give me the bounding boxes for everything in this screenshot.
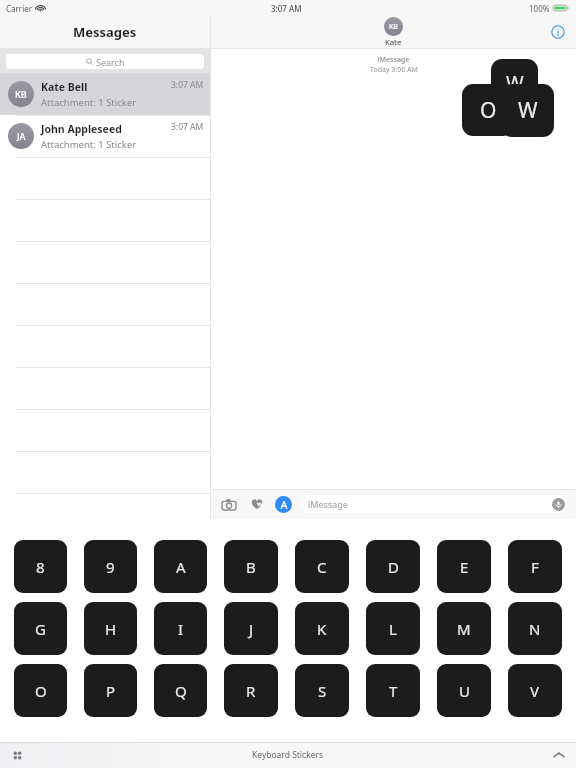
button[interactable]: iMessage <box>300 495 568 513</box>
staticText: Today 3:06 AM <box>370 65 418 75</box>
button[interactable]: I <box>154 602 207 655</box>
staticText: S <box>318 681 327 701</box>
button[interactable]: G <box>14 602 67 655</box>
staticText: Attachment: 1 Sticker <box>41 138 137 151</box>
staticText: 9 <box>106 557 115 577</box>
staticText: F <box>531 557 539 577</box>
staticText: V <box>530 681 540 701</box>
button[interactable]: Expand <box>550 746 568 764</box>
staticText: N <box>529 619 541 639</box>
staticText: 3:07 AM <box>271 3 302 14</box>
staticText: iMessage <box>308 498 348 510</box>
button[interactable]: S <box>295 664 349 717</box>
staticText: U <box>459 681 470 701</box>
staticText: D <box>388 557 399 577</box>
staticText: Keyboard Stickers <box>252 749 324 761</box>
staticText: iMessage <box>377 55 410 65</box>
staticText: R <box>246 681 256 701</box>
staticText: Search <box>96 56 125 68</box>
staticText: E <box>460 557 469 577</box>
staticText: H <box>105 619 117 639</box>
button[interactable]: M <box>437 602 491 655</box>
button[interactable]: KB <box>0 73 210 115</box>
staticText: Messages <box>73 23 137 41</box>
staticText: KB <box>389 22 398 32</box>
staticText: Q <box>175 681 187 701</box>
staticText: M <box>457 619 471 639</box>
button[interactable]: Camera <box>219 494 239 514</box>
button[interactable]: K <box>295 602 349 655</box>
staticText: G <box>35 619 46 639</box>
staticText: Carrier <box>6 3 33 14</box>
staticText: A <box>176 557 186 577</box>
button[interactable]: B <box>224 540 278 593</box>
staticText: JA <box>17 130 26 142</box>
button[interactable]: N <box>508 602 562 655</box>
button[interactable]: 8 <box>14 540 67 593</box>
staticText: KB <box>15 88 27 100</box>
button[interactable]: 9 <box>84 540 137 593</box>
staticText: 3:07 AM <box>171 121 204 133</box>
button[interactable]: V <box>508 664 562 717</box>
button[interactable]: Apps <box>8 746 26 764</box>
staticText: O <box>480 96 497 125</box>
staticText: I <box>178 619 184 639</box>
staticText: O <box>35 681 47 701</box>
staticText: John Appleseed <box>41 122 122 136</box>
button[interactable]: A <box>154 540 207 593</box>
staticText: Kate Bell <box>41 80 88 94</box>
staticText: 100% <box>529 3 550 14</box>
button[interactable]: E <box>437 540 491 593</box>
button[interactable]: L <box>366 602 420 655</box>
staticText: 8 <box>36 557 45 577</box>
button[interactable]: C <box>295 540 349 593</box>
staticText: J <box>249 619 254 639</box>
button[interactable]: J <box>224 602 278 655</box>
button[interactable]: JA <box>0 115 210 157</box>
button[interactable]: App Store <box>275 496 292 513</box>
staticText: T <box>389 681 398 701</box>
button[interactable]: Details <box>550 24 566 40</box>
staticText: 3:07 AM <box>171 79 204 91</box>
button[interactable]: D <box>366 540 420 593</box>
button[interactable]: R <box>224 664 278 717</box>
staticText: i <box>557 27 560 38</box>
staticText: K <box>317 619 327 639</box>
button[interactable]: H <box>84 602 137 655</box>
button[interactable]: KB <box>384 17 403 47</box>
button[interactable]: F <box>508 540 562 593</box>
button[interactable]: T <box>366 664 420 717</box>
button[interactable]: P <box>84 664 137 717</box>
staticText: Attachment: 1 Sticker <box>41 96 137 109</box>
staticText: Kate <box>385 37 402 47</box>
staticText: B <box>246 557 256 577</box>
button[interactable]: Dictate <box>551 497 565 511</box>
staticText: C <box>317 557 327 577</box>
staticText: P <box>106 681 116 701</box>
button[interactable]: U <box>437 664 491 717</box>
staticText: W <box>518 96 538 125</box>
button[interactable]: Digital Touch <box>247 494 267 514</box>
staticText: W <box>506 70 524 96</box>
button[interactable]: Q <box>154 664 207 717</box>
button[interactable]: Search <box>6 54 204 69</box>
button[interactable]: O <box>14 664 67 717</box>
staticText: L <box>389 619 397 639</box>
